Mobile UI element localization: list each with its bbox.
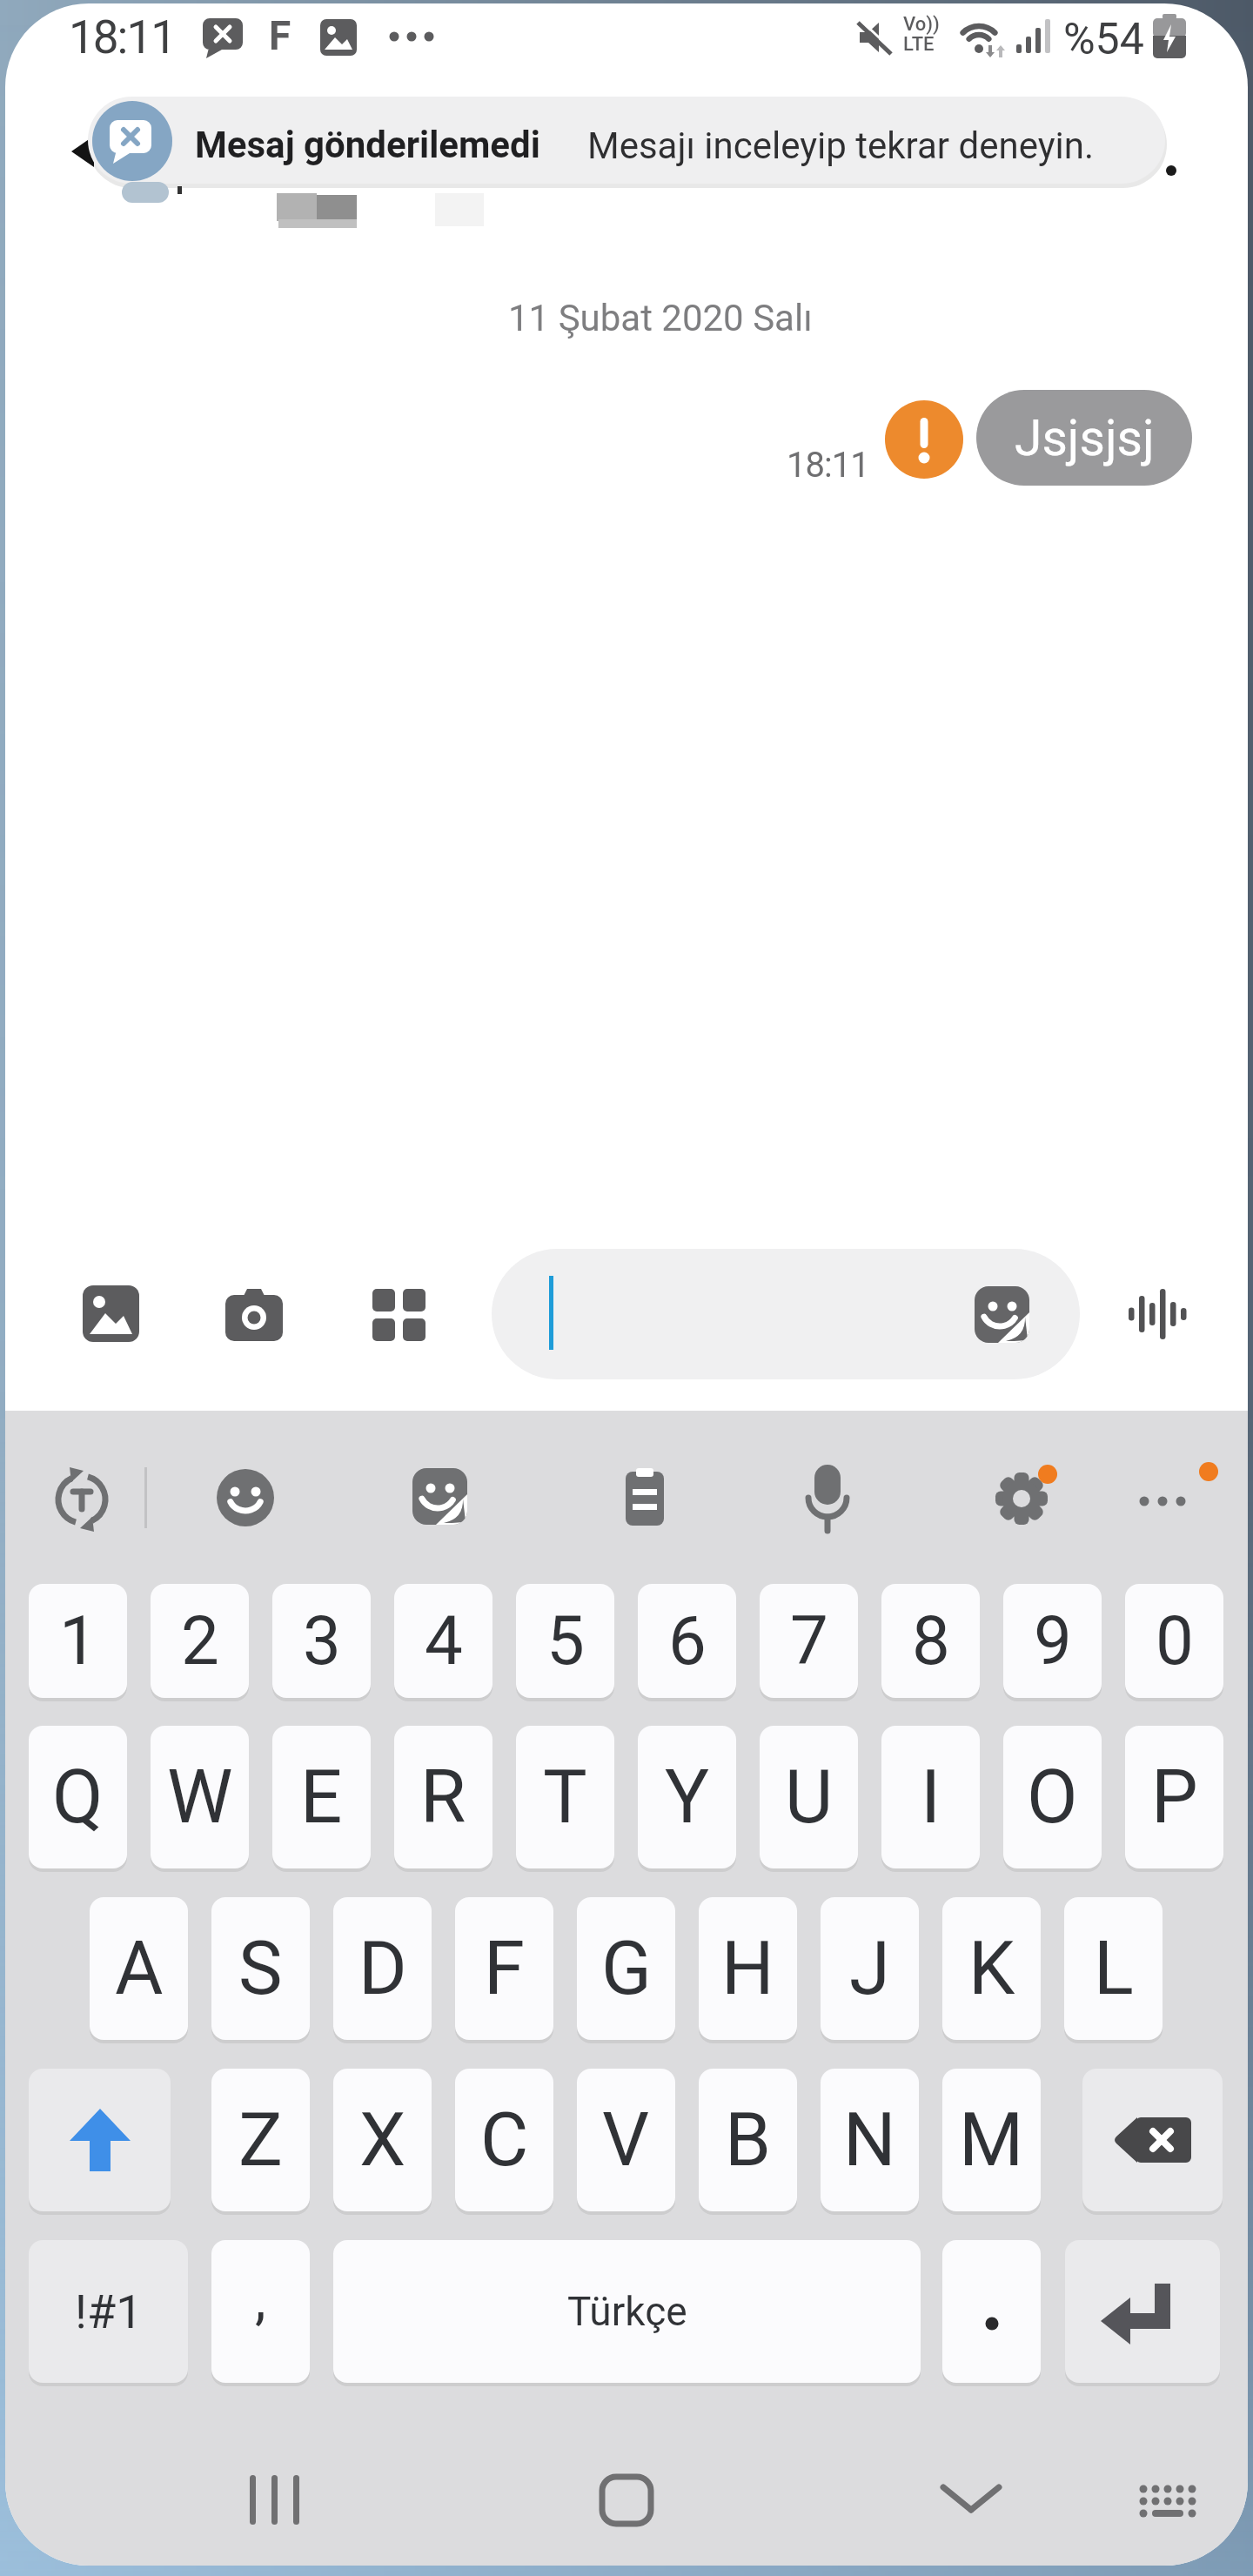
staticText: 1 (59, 1601, 97, 1680)
button[interactable]: F (455, 1897, 553, 2040)
staticText: Jsjsjsj (1015, 409, 1155, 467)
button[interactable]: P (1125, 1726, 1223, 1868)
button[interactable]: G (577, 1897, 675, 2040)
button[interactable]: 7 (760, 1584, 858, 1698)
staticText: J (849, 1925, 890, 2012)
staticText: M (959, 2096, 1024, 2184)
button[interactable]: U (760, 1726, 858, 1868)
button[interactable]: 2 (151, 1584, 249, 1698)
button[interactable] (991, 1469, 1054, 1528)
staticText: Türkçe (567, 2288, 687, 2335)
staticText: 6 (668, 1601, 707, 1680)
button[interactable]: T (516, 1726, 614, 1868)
button[interactable]: O (1003, 1726, 1102, 1868)
button[interactable]: W (151, 1726, 249, 1868)
button[interactable] (83, 1285, 139, 1342)
staticText: Q (52, 1754, 104, 1841)
staticText: 0 (1156, 1601, 1194, 1680)
button[interactable] (250, 2475, 300, 2526)
button[interactable]: 9 (1003, 1584, 1102, 1698)
button[interactable]: Y (638, 1726, 736, 1868)
button[interactable]: Q (29, 1726, 127, 1868)
button[interactable]: V (577, 2069, 675, 2211)
staticText: Mesaj gönderilemedi (195, 124, 540, 166)
staticText: B (725, 2096, 771, 2184)
button[interactable]: !#1 (29, 2240, 188, 2383)
button[interactable] (1065, 2240, 1220, 2383)
staticText: 18:11 (787, 445, 869, 486)
staticText: G (601, 1925, 652, 2012)
button[interactable] (942, 2240, 1041, 2383)
button[interactable]: E (272, 1726, 371, 1868)
button[interactable]: Jsjsjsj (976, 390, 1192, 486)
button[interactable]: 0 (1125, 1584, 1223, 1698)
staticText: 8 (912, 1601, 950, 1680)
staticText: Mesajı inceleyip tekrar deneyin. (587, 124, 1095, 167)
staticText: 9 (1034, 1601, 1072, 1680)
staticText: I (921, 1754, 941, 1841)
button[interactable]: A (90, 1897, 188, 2040)
button[interactable]: M (942, 2069, 1041, 2211)
staticText: R (420, 1754, 466, 1841)
button[interactable] (1126, 1286, 1189, 1342)
button[interactable]: I (881, 1726, 980, 1868)
button[interactable]: 1 (29, 1584, 127, 1698)
button[interactable]: 4 (394, 1584, 492, 1698)
staticText: 2 (181, 1601, 219, 1680)
button[interactable] (626, 1468, 664, 1526)
staticText: T (543, 1754, 587, 1841)
staticText: A (115, 1925, 164, 2012)
button[interactable] (599, 2473, 654, 2527)
button[interactable] (49, 1467, 115, 1532)
button[interactable]: 5 (516, 1584, 614, 1698)
button[interactable] (1138, 1495, 1192, 1507)
button[interactable] (1082, 2069, 1223, 2211)
button[interactable] (1138, 2482, 1197, 2520)
staticText: 11 Şubat 2020 Salı (508, 297, 813, 339)
staticText: O (1027, 1754, 1078, 1841)
button[interactable]: B (699, 2069, 797, 2211)
button[interactable]: C (455, 2069, 553, 2211)
button[interactable]: N (821, 2069, 919, 2211)
staticText: P (1151, 1754, 1198, 1841)
button[interactable]: Türkçe (333, 2240, 921, 2383)
button[interactable] (217, 1469, 274, 1526)
staticText: F (269, 12, 291, 59)
button[interactable] (799, 1465, 856, 1533)
button[interactable] (940, 2482, 1002, 2517)
staticText: Vo)) (903, 13, 940, 36)
button[interactable]: 3 (272, 1584, 371, 1698)
staticText: 7 (790, 1601, 828, 1680)
button[interactable] (29, 2069, 171, 2211)
button[interactable]: K (942, 1897, 1041, 2040)
staticText: LTE (903, 33, 935, 56)
button[interactable]: S (211, 1897, 310, 2040)
button[interactable]: 8 (881, 1584, 980, 1698)
button[interactable] (225, 1289, 283, 1341)
staticText: W (167, 1754, 233, 1841)
button[interactable]: Z (211, 2069, 310, 2211)
button[interactable] (372, 1289, 425, 1341)
staticText: H (721, 1925, 774, 2012)
button[interactable]: H (699, 1897, 797, 2040)
button[interactable] (412, 1468, 468, 1526)
button[interactable]: X (333, 2069, 432, 2211)
button[interactable]: R (394, 1726, 492, 1868)
button[interactable]: 6 (638, 1584, 736, 1698)
staticText: F (484, 1925, 525, 2012)
staticText: D (358, 1925, 407, 2012)
button[interactable]: J (821, 1897, 919, 2040)
button[interactable] (975, 1286, 1030, 1344)
staticText: , (255, 2267, 266, 2332)
button[interactable]: L (1064, 1897, 1163, 2040)
button[interactable] (492, 1249, 1080, 1379)
staticText: 5 (546, 1601, 585, 1680)
staticText: L (1094, 1925, 1134, 2012)
button[interactable]: , (211, 2240, 310, 2383)
button[interactable]: D (333, 1897, 432, 2040)
button[interactable] (88, 97, 1165, 184)
staticText: U (785, 1754, 834, 1841)
staticText: 4 (425, 1601, 463, 1680)
staticText: Z (238, 2096, 283, 2184)
staticText: %54 (1063, 14, 1144, 65)
